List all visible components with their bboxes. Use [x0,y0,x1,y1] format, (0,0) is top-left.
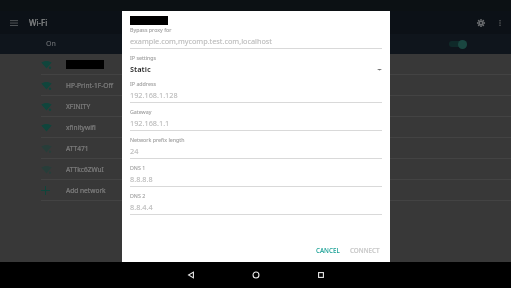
button[interactable]: Home [242,262,270,288]
staticText: XFINITY [66,102,91,111]
staticText: 192.168.1.1 [130,118,382,128]
staticText: IP settings [130,54,157,61]
staticText: Network prefix length [130,136,185,143]
button[interactable]: More options [490,13,509,32]
staticText: xfinitywifi [66,123,96,132]
staticText: ATT471 [66,144,89,153]
staticText: Gateway [130,108,152,115]
staticText: Add network [66,186,106,195]
staticText: ATTkc6ZWuI [66,165,104,174]
staticText: Bypass proxy for [130,26,172,33]
staticText: 24 [130,146,382,156]
button[interactable]: Settings [471,13,490,32]
staticText: DNS 1 [130,164,146,171]
staticText: Wi-Fi [29,17,48,28]
button[interactable]: ATT471 [0,138,511,159]
button[interactable] [0,54,511,75]
staticText: IP address [130,80,157,87]
staticText: DNS 2 [130,192,146,199]
button[interactable]: ATTkc6ZWuI [0,159,511,180]
button[interactable]: Add network [0,180,511,201]
staticText: HP-Print-1F-Off [66,81,113,90]
button[interactable]: HP-Print-1F-Off [0,75,511,96]
button[interactable]: CANCEL [311,243,345,258]
button[interactable]: XFINITY [0,96,511,117]
button[interactable]: CONNECT [345,243,385,258]
staticText: CANCEL [316,246,340,255]
staticText: 8.8.4.4 [130,202,382,212]
staticText: example.com,mycomp.test.com,localhost [130,36,382,46]
button[interactable]: xfinitywifi [0,117,511,138]
staticText: CONNECT [350,246,380,255]
staticText: 8.8.8.8 [130,174,382,184]
staticText: 192.168.1.128 [130,90,382,100]
button[interactable]: Open navigation drawer [6,15,22,31]
button[interactable]: Back [177,262,205,288]
staticText: On [46,39,56,49]
button[interactable]: Recent apps [307,262,335,288]
button[interactable]: Wi-Fi toggle, on [448,38,470,50]
staticText: Static [130,64,377,74]
